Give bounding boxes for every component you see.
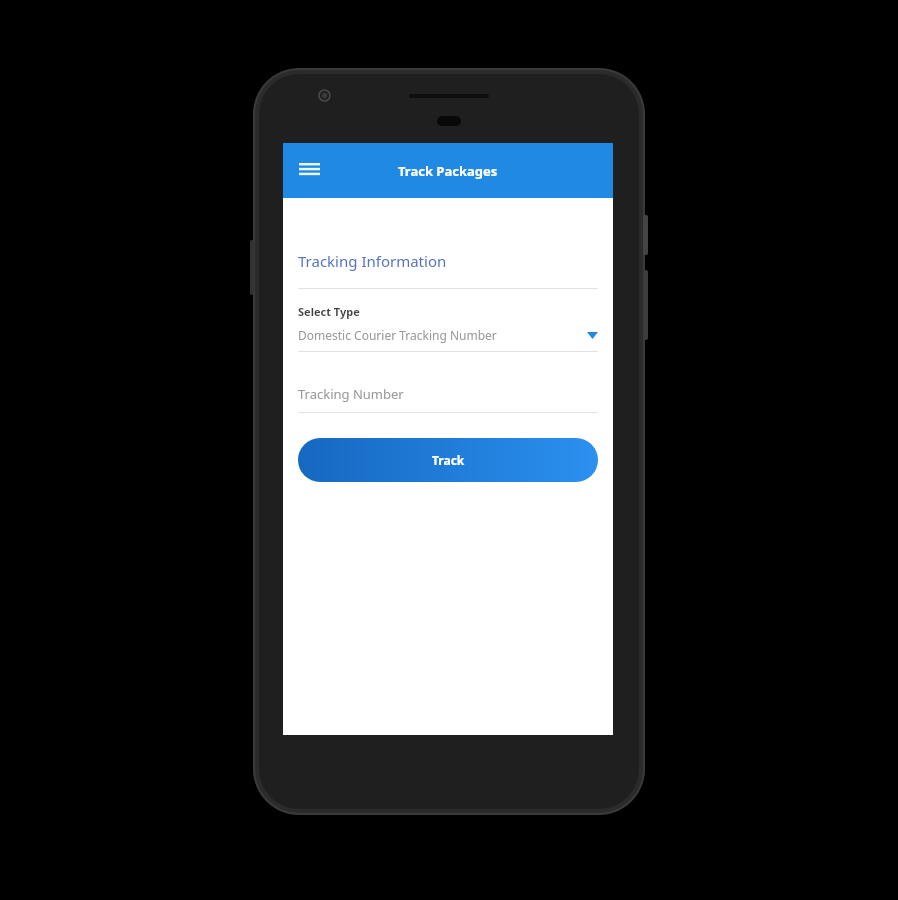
staticText: Domestic Courier Tracking Number xyxy=(298,327,587,343)
staticText: Track Packages xyxy=(398,162,498,180)
staticText: Track xyxy=(432,452,465,468)
button[interactable]: Tracking Number xyxy=(298,385,598,403)
button[interactable]: Track xyxy=(298,438,598,482)
staticText: Tracking Number xyxy=(298,385,404,403)
button[interactable]: Open navigation menu xyxy=(287,149,331,193)
staticText: Select Type xyxy=(298,304,360,319)
button[interactable]: Domestic Courier Tracking Number xyxy=(298,327,598,343)
staticText: Tracking Information xyxy=(298,251,447,271)
